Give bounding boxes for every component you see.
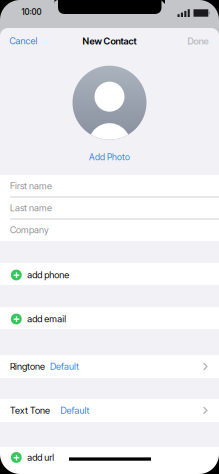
staticText: Add Photo (89, 152, 130, 162)
button[interactable]: First name (0, 175, 219, 197)
staticText: Ringtone (10, 361, 45, 372)
button[interactable]: Text Tone (0, 399, 219, 422)
staticText: Last name (10, 202, 52, 213)
staticText: Company (10, 224, 49, 235)
staticText: First name (10, 180, 52, 191)
button[interactable]: Last name (0, 197, 219, 219)
staticText: Text Tone (10, 405, 50, 416)
staticText: Done (187, 35, 208, 47)
staticText: New Contact (82, 35, 136, 47)
staticText: add url (27, 452, 54, 463)
button[interactable]: Add Photo (72, 66, 146, 162)
button[interactable]: Cancel (9, 35, 37, 46)
staticText: Cancel (9, 35, 37, 46)
button[interactable]: Company (0, 219, 219, 241)
button[interactable]: add email (0, 307, 219, 329)
staticText: 10:00 (21, 7, 41, 17)
button[interactable]: Done (187, 35, 208, 47)
staticText: Default (50, 361, 79, 372)
staticText: add phone (27, 269, 69, 280)
button[interactable]: Ringtone (0, 355, 219, 378)
button[interactable]: add url (0, 447, 219, 474)
button[interactable]: add phone (0, 263, 219, 285)
staticText: add email (27, 313, 66, 324)
staticText: Default (60, 405, 89, 416)
